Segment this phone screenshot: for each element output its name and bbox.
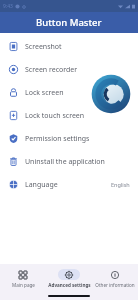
staticText: Other information: [95, 282, 135, 288]
staticText: Button Master: [36, 16, 102, 29]
button[interactable]: Screenshot: [0, 35, 138, 58]
staticText: Advanced settings: [48, 282, 91, 288]
staticText: Permission settings: [25, 134, 90, 144]
staticText: Screen recorder: [25, 65, 78, 75]
staticText: English: [111, 181, 130, 188]
staticText: Screenshot: [25, 42, 62, 52]
button[interactable]: Main page: [0, 264, 46, 292]
button[interactable]: Lock touch screen: [0, 104, 138, 127]
button[interactable]: Language: [0, 173, 138, 196]
button[interactable]: Lock screen: [0, 81, 138, 104]
staticText: Language: [25, 180, 58, 190]
button[interactable]: Permission settings: [0, 127, 138, 150]
button[interactable]: Other information: [92, 264, 138, 292]
staticText: Lock screen: [25, 88, 64, 98]
button[interactable]: Uninstall the application: [0, 150, 138, 173]
button[interactable]: Screen recorder: [0, 58, 138, 81]
staticText: 9:43: [3, 3, 13, 10]
staticText: Main page: [12, 282, 35, 288]
button[interactable]: Advanced settings: [46, 264, 92, 292]
staticText: Uninstall the application: [25, 157, 105, 167]
staticText: Lock touch screen: [25, 111, 85, 121]
